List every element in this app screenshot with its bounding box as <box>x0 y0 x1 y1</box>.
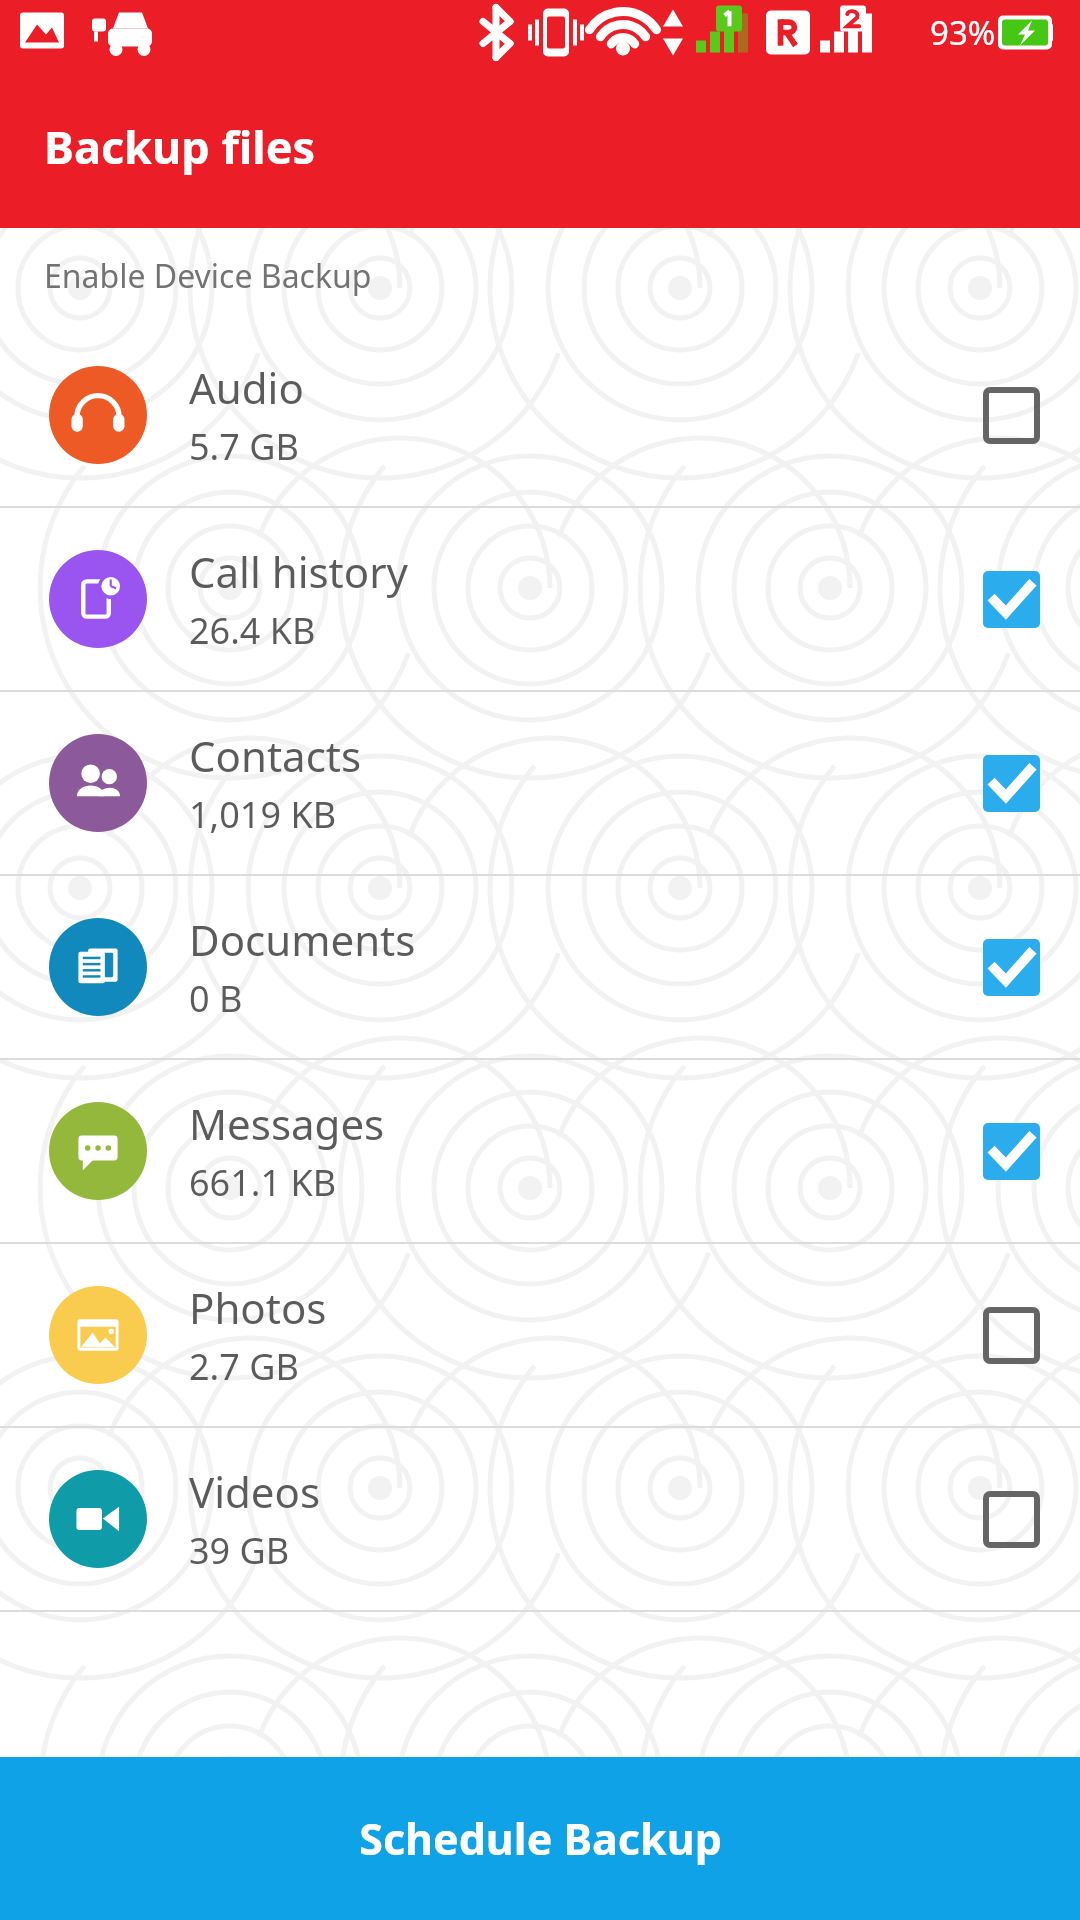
staticText: Photos <box>189 1279 327 1336</box>
button[interactable]: Toggle Documents <box>948 904 1074 1030</box>
staticText: Backup files <box>44 116 316 177</box>
button[interactable]: Toggle Videos <box>948 1456 1074 1582</box>
button[interactable]: Toggle Photos <box>948 1272 1074 1398</box>
button[interactable]: Documents <box>0 876 1080 1058</box>
staticText: Documents <box>189 911 416 968</box>
staticText: Contacts <box>189 727 362 784</box>
button[interactable]: Toggle Contacts <box>948 720 1074 846</box>
staticText: 39 GB <box>189 1526 290 1575</box>
button[interactable]: Audio <box>0 324 1080 506</box>
staticText: 26.4 KB <box>189 606 316 655</box>
staticText: 2.7 GB <box>189 1342 299 1391</box>
button[interactable]: Messages <box>0 1060 1080 1242</box>
staticText: Call history <box>189 543 408 600</box>
staticText: 661.1 KB <box>189 1158 337 1207</box>
button[interactable]: Contacts <box>0 692 1080 874</box>
staticText: Messages <box>189 1095 385 1152</box>
button[interactable]: Photos <box>0 1244 1080 1426</box>
button[interactable]: Videos <box>0 1428 1080 1610</box>
staticText: Enable Device Backup <box>44 254 372 298</box>
button[interactable]: Schedule Backup <box>0 1757 1080 1920</box>
staticText: 5.7 GB <box>189 422 299 471</box>
staticText: Audio <box>189 359 304 416</box>
staticText: Schedule Backup <box>359 1809 722 1868</box>
button[interactable]: Toggle Audio <box>948 352 1074 478</box>
staticText: Videos <box>189 1463 321 1520</box>
button[interactable]: Toggle Messages <box>948 1088 1074 1214</box>
staticText: 1,019 KB <box>189 790 337 839</box>
button[interactable]: Toggle Call history <box>948 536 1074 662</box>
button[interactable]: Call history <box>0 508 1080 690</box>
staticText: 0 B <box>189 974 243 1023</box>
staticText: 93% <box>930 10 996 55</box>
